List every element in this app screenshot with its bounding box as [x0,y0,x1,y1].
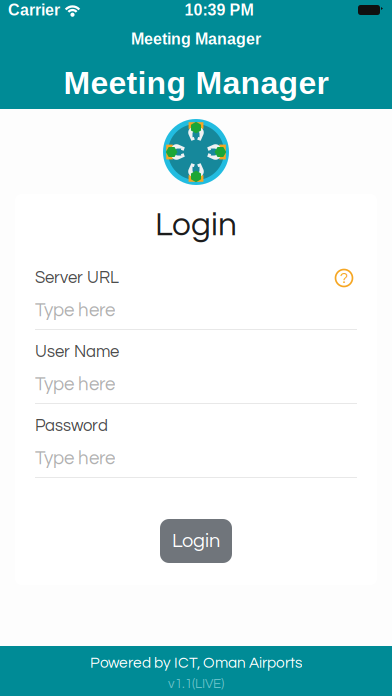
staticText: Login [155,208,237,242]
staticText: 10:39 PM [184,1,253,19]
button[interactable]: Type here [35,292,357,329]
staticText: User Name [35,343,119,361]
staticText: Type here [35,449,115,468]
staticText: Server URL [35,269,119,287]
button[interactable]: Type here [35,366,357,403]
staticText: Meeting Manager [131,30,261,48]
button[interactable]: Help with Server URL [331,265,357,291]
staticText: v1.1(LIVE) [168,677,224,691]
staticText: ? [340,270,348,286]
staticText: Password [35,417,108,435]
staticText: Meeting Manager [63,65,328,101]
staticText: Carrier [8,1,60,19]
staticText: Type here [35,375,115,394]
button[interactable]: Login [160,519,232,563]
staticText: Powered by ICT, Oman Airports [90,655,302,671]
button[interactable]: Type here [35,440,357,477]
staticText: Type here [35,301,115,320]
staticText: Login [172,531,220,551]
